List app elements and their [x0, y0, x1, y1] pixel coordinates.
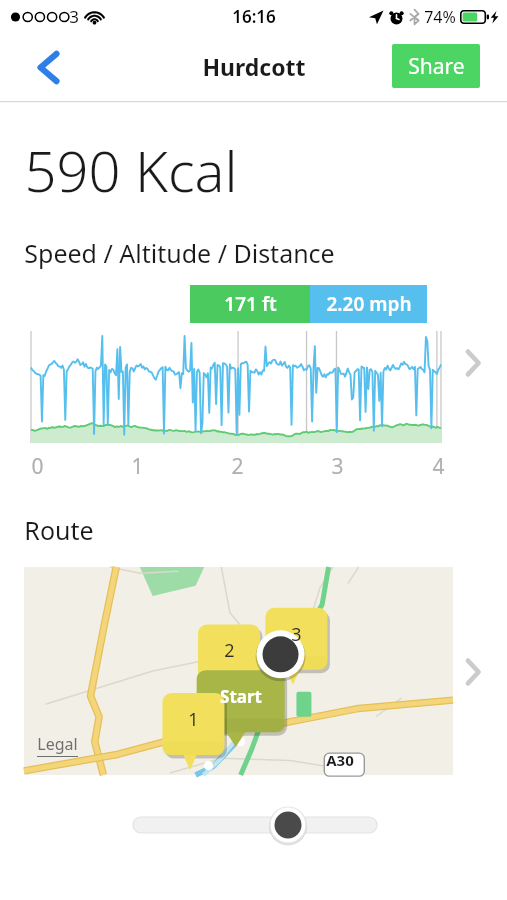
staticText: 2.20 mph — [326, 291, 412, 317]
staticText: Hurdcott — [202, 51, 306, 82]
staticText: 1 — [188, 707, 199, 732]
staticText: A30 — [326, 750, 354, 770]
staticText: 4 — [432, 452, 445, 478]
staticText: Share — [408, 52, 465, 81]
other: Next chart — [456, 341, 490, 385]
other: Next map — [456, 650, 490, 694]
staticText: 16:16 — [232, 5, 276, 28]
staticText: Route — [24, 513, 94, 547]
staticText: 3 — [291, 622, 302, 647]
button[interactable]: 3 — [24, 567, 453, 775]
button[interactable]: Share — [392, 44, 480, 88]
staticText: 3 — [69, 5, 79, 28]
staticText: Start — [220, 685, 262, 708]
staticText: Legal — [37, 733, 78, 755]
staticText: 171 ft — [224, 291, 277, 317]
staticText: 2 — [231, 452, 244, 478]
staticText: 74% — [424, 6, 456, 28]
staticText: 2 — [224, 638, 235, 663]
staticText: 1 — [131, 452, 144, 478]
button[interactable]: 2.20 mph — [310, 285, 427, 323]
staticText: 0 — [31, 452, 44, 478]
button[interactable]: 171 ft — [0, 285, 507, 485]
button[interactable]: 171 ft — [190, 285, 310, 323]
staticText: 3 — [331, 452, 344, 478]
staticText: 590 Kcal — [24, 132, 238, 208]
button[interactable]: Timeline slider — [0, 799, 507, 851]
button[interactable]: Back — [22, 41, 74, 93]
staticText: Speed / Altitude / Distance — [24, 236, 335, 270]
